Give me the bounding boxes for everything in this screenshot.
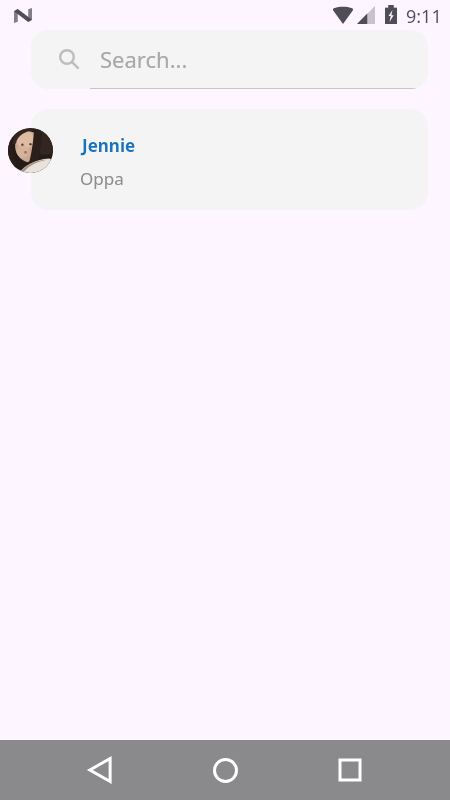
button[interactable]: Home bbox=[195, 740, 255, 800]
button[interactable]: Back bbox=[70, 740, 130, 800]
staticText: Search... bbox=[100, 44, 188, 74]
button[interactable]: Jennie profile photo bbox=[8, 128, 53, 173]
staticText: Jennie bbox=[82, 134, 136, 157]
button[interactable]: Jennie bbox=[31, 109, 428, 210]
staticText: 9:11 bbox=[406, 4, 442, 29]
staticText: Oppa bbox=[80, 167, 124, 190]
button[interactable]: Recent apps bbox=[320, 740, 380, 800]
button[interactable]: Search... bbox=[31, 30, 428, 89]
